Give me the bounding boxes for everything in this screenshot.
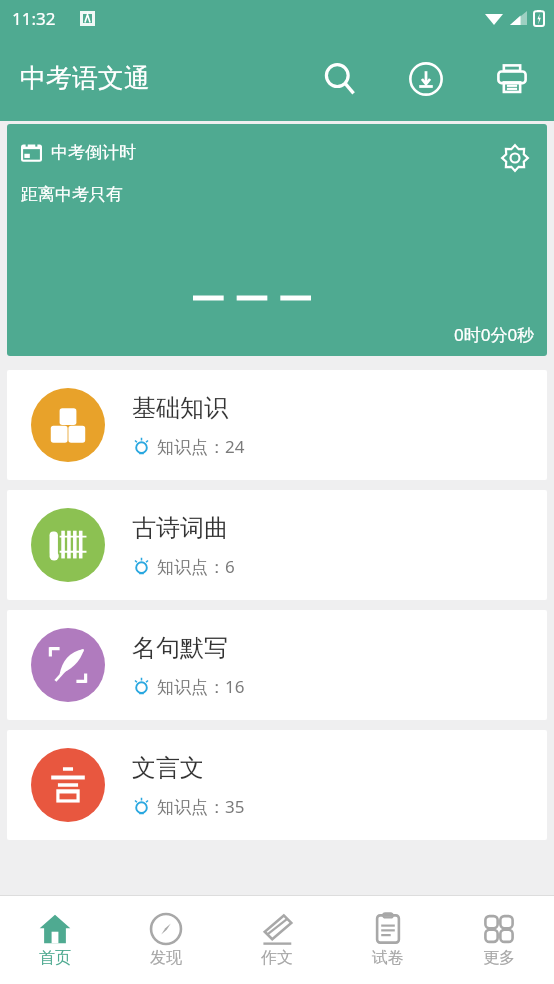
staticText: 0时0分0秒	[454, 323, 535, 346]
staticText: 知识点：35	[157, 795, 245, 818]
button[interactable]: Print	[484, 51, 540, 107]
button[interactable]: 中考倒计时	[7, 124, 547, 356]
button[interactable]: 古诗词曲	[7, 490, 547, 600]
button[interactable]: Search	[312, 51, 368, 107]
staticText: 更多	[483, 948, 515, 968]
button[interactable]: Settings	[493, 136, 537, 180]
button[interactable]: 更多	[443, 896, 554, 984]
staticText: 知识点：24	[157, 435, 245, 458]
staticText: 基础知识	[132, 393, 228, 423]
staticText: 知识点：16	[157, 675, 245, 698]
staticText: 中考语文通	[20, 62, 150, 95]
staticText: 11:32	[12, 7, 56, 30]
staticText: 试卷	[372, 948, 404, 968]
staticText: 知识点：6	[157, 555, 235, 578]
staticText: 文言文	[132, 753, 204, 783]
staticText: 中考倒计时	[51, 142, 136, 163]
button[interactable]: 发现	[110, 896, 221, 984]
button[interactable]: 首页	[0, 896, 110, 984]
staticText: 发现	[150, 948, 182, 968]
button[interactable]: 名句默写	[7, 610, 547, 720]
staticText: 作文	[261, 948, 293, 968]
button[interactable]: 基础知识	[7, 370, 547, 480]
button[interactable]: 作文	[221, 896, 332, 984]
staticText: 首页	[39, 948, 71, 968]
staticText: 名句默写	[132, 633, 228, 663]
staticText: 古诗词曲	[132, 513, 228, 543]
staticText: 距离中考只有	[21, 184, 123, 205]
button[interactable]: Download	[398, 51, 454, 107]
button[interactable]: 文言文	[7, 730, 547, 840]
button[interactable]: 试卷	[332, 896, 443, 984]
